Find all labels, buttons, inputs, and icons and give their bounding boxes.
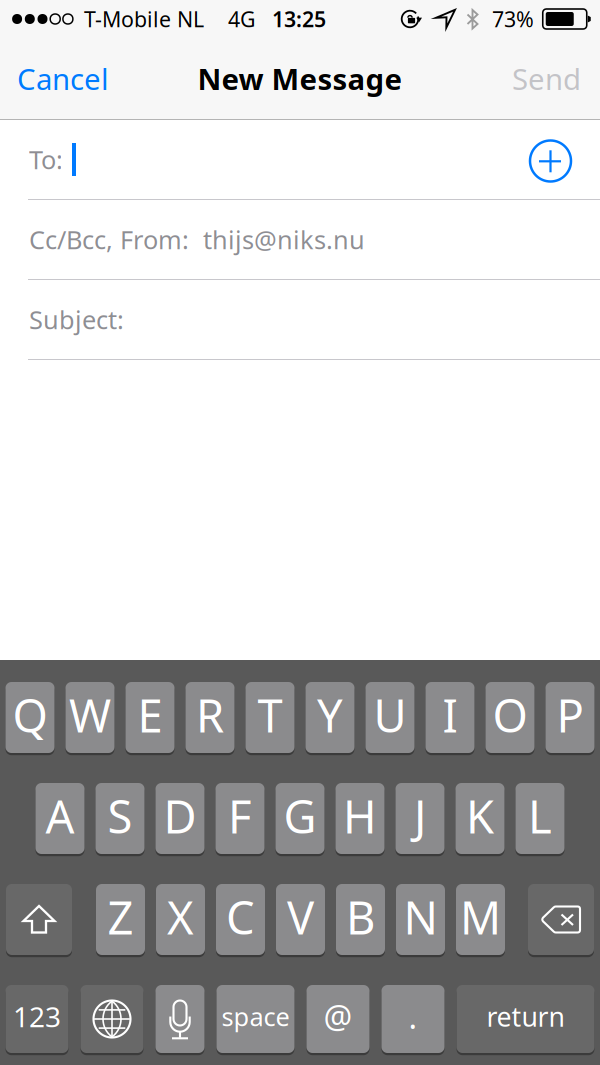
staticText: B: [346, 887, 375, 947]
button[interactable]: Q: [5, 682, 54, 753]
button[interactable]: G: [275, 783, 324, 854]
button[interactable]: M: [456, 884, 505, 955]
button[interactable]: B: [336, 884, 385, 955]
staticText: W: [69, 685, 111, 745]
button[interactable]: @: [306, 985, 369, 1053]
button[interactable]: Shift: [6, 884, 72, 955]
button[interactable]: return: [456, 985, 594, 1053]
staticText: Cancel: [17, 59, 109, 98]
button[interactable]: N: [396, 884, 445, 955]
staticText: T-Mobile NL: [84, 5, 204, 33]
staticText: Y: [317, 685, 343, 745]
staticText: X: [167, 887, 194, 947]
staticText: 13:25: [272, 5, 326, 33]
button[interactable]: O: [485, 682, 534, 753]
button[interactable]: space: [216, 985, 294, 1053]
button[interactable]: Cc/Bcc, From: thijs@niks.nu: [0, 200, 600, 279]
button[interactable]: T: [245, 682, 294, 753]
button[interactable]: Y: [305, 682, 354, 753]
button[interactable]: H: [335, 783, 384, 854]
button[interactable]: K: [455, 783, 504, 854]
staticText: M: [460, 887, 501, 947]
button[interactable]: W: [65, 682, 114, 753]
staticText: O: [492, 685, 527, 745]
staticText: .: [408, 995, 417, 1038]
staticText: H: [343, 786, 377, 846]
staticText: 123: [13, 998, 61, 1035]
staticText: T: [257, 685, 282, 745]
button[interactable]: V: [276, 884, 325, 955]
staticText: K: [466, 786, 494, 846]
staticText: N: [403, 887, 437, 947]
staticText: @: [323, 995, 352, 1038]
staticText: L: [528, 786, 552, 846]
staticText: New Message: [197, 59, 402, 98]
button[interactable]: 123: [5, 985, 68, 1053]
staticText: G: [283, 786, 316, 846]
staticText: R: [196, 685, 224, 745]
staticText: 4G: [228, 5, 256, 33]
staticText: P: [556, 685, 583, 745]
staticText: Subject:: [29, 303, 124, 336]
staticText: C: [226, 887, 255, 947]
button[interactable]: .: [381, 985, 444, 1053]
button[interactable]: Subject:: [0, 280, 600, 359]
button[interactable]: F: [215, 783, 264, 854]
button[interactable]: R: [185, 682, 234, 753]
button[interactable]: E: [125, 682, 174, 753]
staticText: U: [373, 685, 406, 745]
staticText: Cc/Bcc, From: thijs@niks.nu: [29, 223, 365, 256]
button[interactable]: A: [35, 783, 84, 854]
button[interactable]: L: [515, 783, 564, 854]
staticText: I: [442, 685, 457, 745]
staticText: F: [228, 786, 252, 846]
staticText: E: [137, 685, 162, 745]
staticText: Q: [12, 685, 47, 745]
button[interactable]: Cancel: [0, 38, 147, 119]
button[interactable]: X: [156, 884, 205, 955]
staticText: Send: [512, 59, 581, 98]
button[interactable]: P: [545, 682, 594, 753]
staticText: To:: [29, 143, 63, 176]
button[interactable]: Delete: [528, 884, 594, 955]
staticText: Z: [107, 887, 133, 947]
staticText: space: [221, 1000, 289, 1033]
staticText: D: [163, 786, 196, 846]
button[interactable]: Dictation: [155, 985, 204, 1053]
button[interactable]: U: [365, 682, 414, 753]
button[interactable]: To:: [0, 120, 600, 199]
button[interactable]: I: [425, 682, 474, 753]
button[interactable]: S: [95, 783, 144, 854]
staticText: A: [45, 786, 74, 846]
button[interactable]: J: [395, 783, 444, 854]
staticText: 73%: [492, 5, 534, 33]
staticText: V: [287, 887, 314, 947]
button[interactable]: Next keyboard: [80, 985, 143, 1053]
button[interactable]: D: [155, 783, 204, 854]
staticText: S: [107, 786, 132, 846]
staticText: J: [414, 786, 426, 846]
staticText: return: [486, 999, 564, 1034]
button[interactable]: Z: [96, 884, 145, 955]
button[interactable]: Send: [481, 38, 600, 119]
button[interactable]: C: [216, 884, 265, 955]
